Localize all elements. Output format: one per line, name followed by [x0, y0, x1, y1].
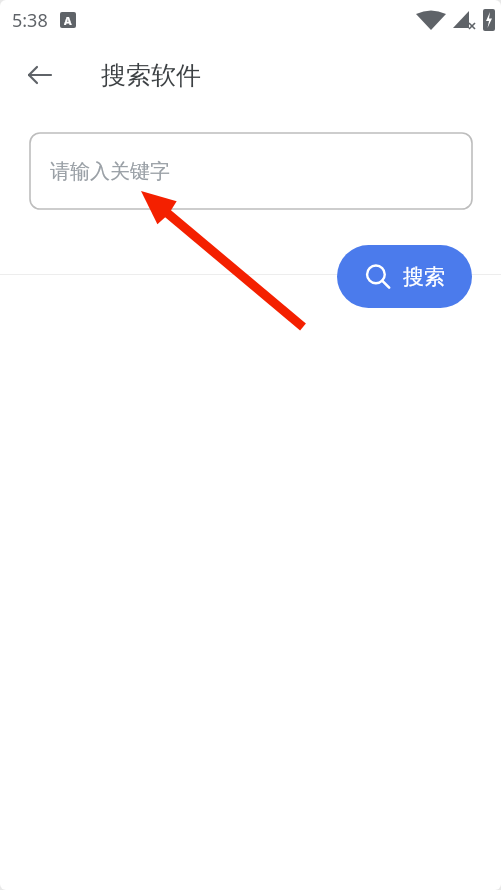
staticText: A: [64, 13, 72, 28]
staticText: 5:38: [12, 8, 48, 33]
button[interactable]: Back: [18, 53, 62, 97]
button[interactable]: 请输入关键字: [30, 133, 472, 209]
button[interactable]: 搜索: [337, 245, 472, 308]
staticText: 请输入关键字: [50, 159, 170, 184]
staticText: 搜索软件: [101, 60, 201, 91]
staticText: 搜索: [403, 264, 445, 290]
